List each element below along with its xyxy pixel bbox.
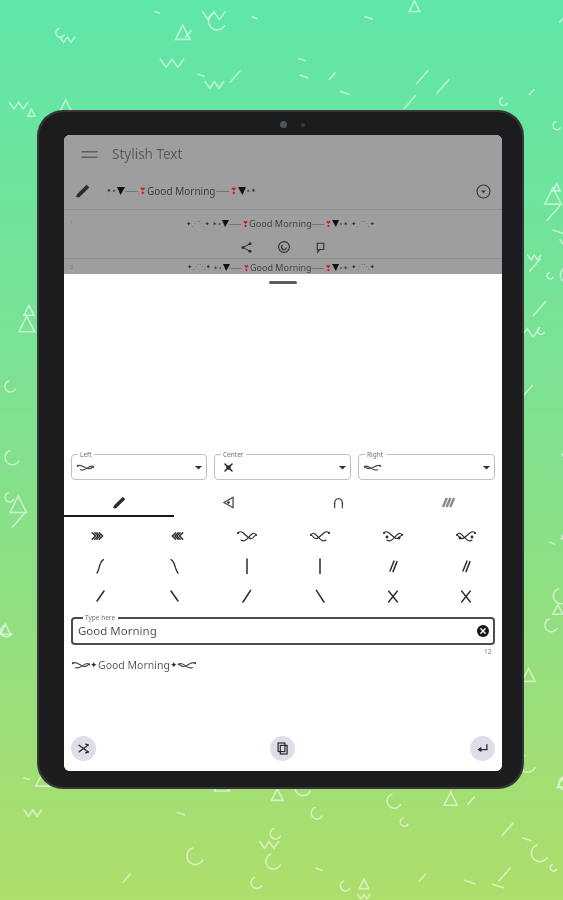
staticText: Good Morning	[147, 184, 216, 198]
button[interactable]: Symbol 3	[210, 521, 283, 551]
staticText: Stylish Text	[112, 145, 183, 163]
staticText: ❣	[230, 186, 238, 196]
staticText: Good Morning	[249, 217, 312, 230]
button[interactable]: Symbol 2	[137, 521, 210, 551]
staticText: 1	[70, 219, 74, 227]
staticText: ⸺	[312, 263, 325, 272]
staticText: ⸺	[230, 263, 243, 272]
staticText: ✦⋰⋱✦	[351, 220, 375, 228]
staticText: Good Morning	[98, 658, 170, 672]
button[interactable]: Symbol 1	[64, 521, 137, 551]
button[interactable]: Right symbol	[358, 454, 495, 480]
staticText: ✶⋆	[106, 187, 117, 195]
button[interactable]: Left symbol	[71, 454, 207, 480]
staticText: Good Morning	[78, 623, 157, 639]
staticText: ⸺	[216, 186, 230, 196]
button[interactable]: Symbol 5	[356, 521, 429, 551]
button[interactable]: ✶⋆	[64, 173, 502, 209]
other: More	[477, 185, 490, 198]
button[interactable]: Tab 1	[64, 489, 174, 515]
staticText: ✶⋆	[213, 264, 223, 271]
staticText: ✦	[90, 660, 98, 670]
button[interactable]: Symbol 11	[356, 551, 429, 581]
button[interactable]: Tab 4	[393, 489, 502, 515]
staticText: ❣	[139, 186, 147, 196]
button[interactable]: Tab 2	[174, 489, 283, 515]
button[interactable]: Center symbol	[214, 454, 351, 480]
button[interactable]: Share	[238, 239, 254, 255]
staticText: ✶⋆	[212, 220, 222, 227]
staticText: ⋆✶	[339, 220, 349, 227]
button[interactable]: Symbol 16	[283, 581, 356, 611]
staticText: ✦⋰⋱✦	[186, 220, 210, 228]
button[interactable]: 1	[64, 210, 502, 258]
staticText: ⋆✶	[339, 264, 349, 271]
staticText: ❣	[325, 219, 332, 229]
button[interactable]: Symbol 8	[137, 551, 210, 581]
button[interactable]: Symbol 10	[283, 551, 356, 581]
button[interactable]: Symbol 15	[210, 581, 283, 611]
staticText: ❣	[242, 219, 249, 229]
button[interactable]: Menu	[76, 141, 102, 167]
button[interactable]: Symbol 18	[429, 581, 502, 611]
staticText: ✦⋰⋱✦	[351, 263, 375, 271]
button[interactable]: Shuffle	[71, 736, 96, 761]
staticText: 12	[484, 647, 492, 656]
staticText: ⸺	[229, 219, 242, 228]
staticText: ✦⋰⋱✦	[187, 263, 211, 271]
button[interactable]: Symbol 9	[210, 551, 283, 581]
other: Clear	[477, 625, 489, 637]
button[interactable]: Symbol 17	[356, 581, 429, 611]
button[interactable]: Copy	[270, 736, 295, 761]
staticText: Left	[80, 450, 92, 459]
staticText: ❣	[243, 263, 250, 272]
button[interactable]: Symbol 7	[64, 551, 137, 581]
button[interactable]: Symbol 12	[429, 551, 502, 581]
button[interactable]: Tab 3	[283, 489, 393, 515]
staticText: Good Morning	[250, 261, 312, 273]
staticText: ⋆✶	[246, 187, 257, 195]
button[interactable]: WhatsApp	[276, 239, 292, 255]
staticText: ✦	[170, 660, 178, 670]
staticText: 2	[70, 263, 74, 271]
button[interactable]: Message	[312, 239, 328, 255]
button[interactable]: Symbol 4	[283, 521, 356, 551]
button[interactable]: Symbol 14	[137, 581, 210, 611]
staticText: Right	[367, 450, 384, 459]
button[interactable]: Symbol 6	[429, 521, 502, 551]
staticText: Center	[223, 450, 244, 459]
staticText: ⸺	[125, 186, 139, 196]
staticText: ❣	[325, 263, 332, 272]
staticText: ⸺	[312, 219, 325, 228]
staticText: Type here	[85, 613, 116, 622]
button[interactable]: Symbol 13	[64, 581, 137, 611]
button[interactable]: Good Morning	[71, 617, 495, 645]
button[interactable]: Enter	[470, 736, 495, 761]
